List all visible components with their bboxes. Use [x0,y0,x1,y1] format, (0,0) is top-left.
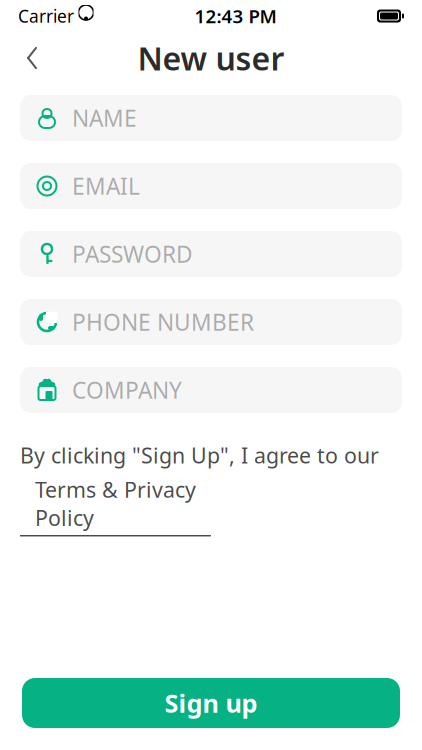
button[interactable]: PASSWORD [20,231,402,277]
button[interactable]: Back [12,38,52,78]
staticText: PHONE NUMBER [72,307,254,337]
button[interactable]: Sign up [22,678,400,728]
staticText: PASSWORD [72,239,193,269]
staticText: Carrier [18,4,74,27]
staticText: Sign up [164,686,257,720]
button[interactable]: NAME [20,95,402,141]
staticText: COMPANY [72,375,182,405]
staticText: New user [137,37,284,79]
button[interactable]: Terms & Privacy Policy [20,475,211,536]
staticText: Terms & Privacy Policy [35,475,196,532]
button[interactable]: EMAIL [20,163,402,209]
staticText: By clicking "Sign Up", I agree to our [20,441,379,469]
button[interactable]: PHONE NUMBER [20,299,402,345]
staticText: NAME [72,103,137,133]
staticText: 12:43 PM [194,4,276,28]
button[interactable]: COMPANY [20,367,402,413]
staticText: EMAIL [72,171,140,201]
